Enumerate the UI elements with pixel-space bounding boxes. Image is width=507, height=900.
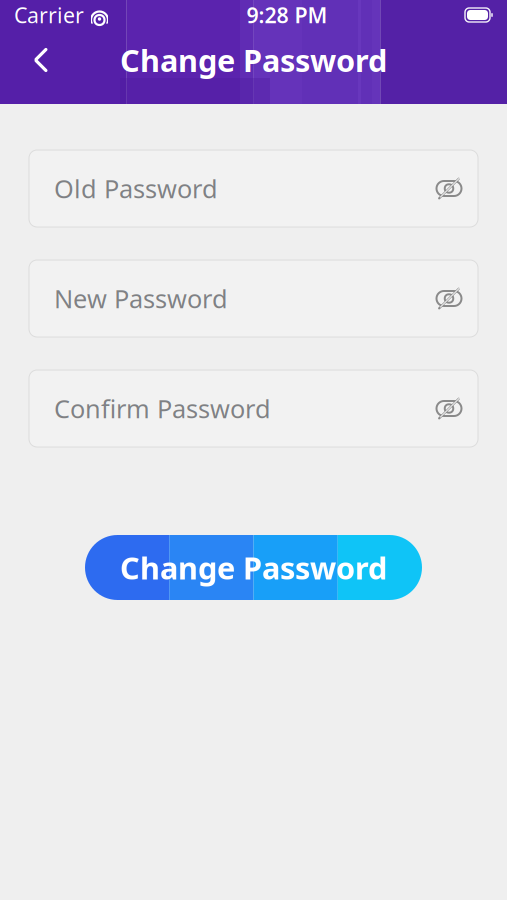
button[interactable]: Show New Password xyxy=(430,276,468,320)
staticText: Change Password xyxy=(120,40,387,80)
staticText: Change Password xyxy=(120,547,387,588)
button[interactable]: Show Confirm Password xyxy=(430,386,468,430)
staticText: New Password xyxy=(54,282,228,315)
button[interactable]: Back xyxy=(18,35,64,85)
button[interactable]: Change Password xyxy=(85,535,422,600)
staticText: Carrier xyxy=(14,1,84,29)
staticText: Old Password xyxy=(54,172,218,205)
staticText: Confirm Password xyxy=(54,392,271,425)
staticText: 9:28 PM xyxy=(246,1,327,29)
button[interactable]: Show Old Password xyxy=(430,166,468,210)
